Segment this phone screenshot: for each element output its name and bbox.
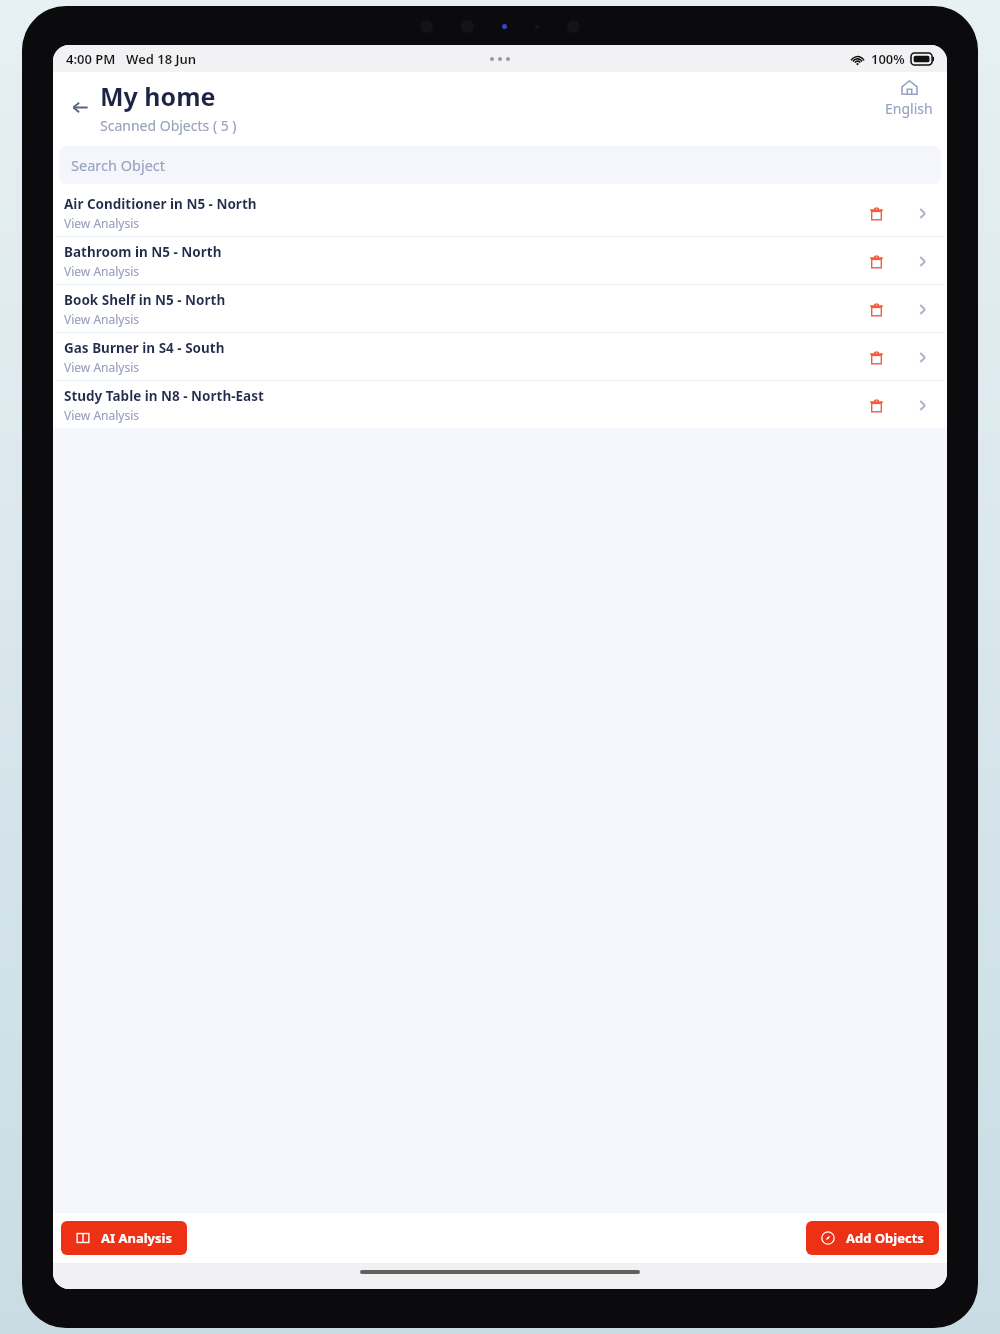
staticText: English (885, 99, 933, 118)
button[interactable]: Air Conditioner in N5 - North (53, 189, 947, 236)
staticText: My home (100, 79, 216, 113)
button[interactable]: Add Objects (806, 1221, 939, 1255)
button[interactable]: Delete (859, 340, 893, 374)
staticText: View Analysis (64, 311, 140, 327)
button[interactable]: Study Table in N8 - North-East (53, 381, 947, 428)
button[interactable]: Gas Burner in S4 - South (53, 333, 947, 380)
staticText: 4:00 PM (66, 50, 116, 68)
staticText: Book Shelf in N5 - North (64, 291, 226, 309)
staticText: Search Object (71, 155, 166, 175)
staticText: Bathroom in N5 - North (64, 243, 222, 261)
button[interactable]: Bathroom in N5 - North (53, 237, 947, 284)
button[interactable]: Home and language (885, 79, 933, 118)
staticText: Scanned Objects ( 5 ) (100, 116, 237, 135)
button[interactable]: Delete (859, 244, 893, 278)
staticText: Add Objects (846, 1229, 924, 1247)
button[interactable]: Open details (907, 294, 937, 324)
button[interactable]: Delete (859, 196, 893, 230)
button[interactable]: Delete (859, 388, 893, 422)
button[interactable]: Open details (907, 198, 937, 228)
staticText: AI Analysis (101, 1229, 172, 1247)
button[interactable]: Book Shelf in N5 - North (53, 285, 947, 332)
button[interactable]: Delete (859, 292, 893, 326)
staticText: 100% (871, 50, 905, 68)
button[interactable]: Open details (907, 390, 937, 420)
staticText: View Analysis (64, 263, 140, 279)
staticText: Gas Burner in S4 - South (64, 339, 225, 357)
staticText: View Analysis (64, 215, 140, 231)
staticText: View Analysis (64, 407, 140, 423)
staticText: Study Table in N8 - North-East (64, 387, 264, 405)
button[interactable]: Open details (907, 342, 937, 372)
staticText: Wed 18 Jun (126, 50, 197, 68)
button[interactable]: AI Analysis (61, 1221, 187, 1255)
button[interactable]: Open details (907, 246, 937, 276)
staticText: Air Conditioner in N5 - North (64, 195, 257, 213)
button[interactable]: Back (63, 90, 97, 124)
staticText: View Analysis (64, 359, 140, 375)
button[interactable]: Search Object (59, 146, 941, 184)
